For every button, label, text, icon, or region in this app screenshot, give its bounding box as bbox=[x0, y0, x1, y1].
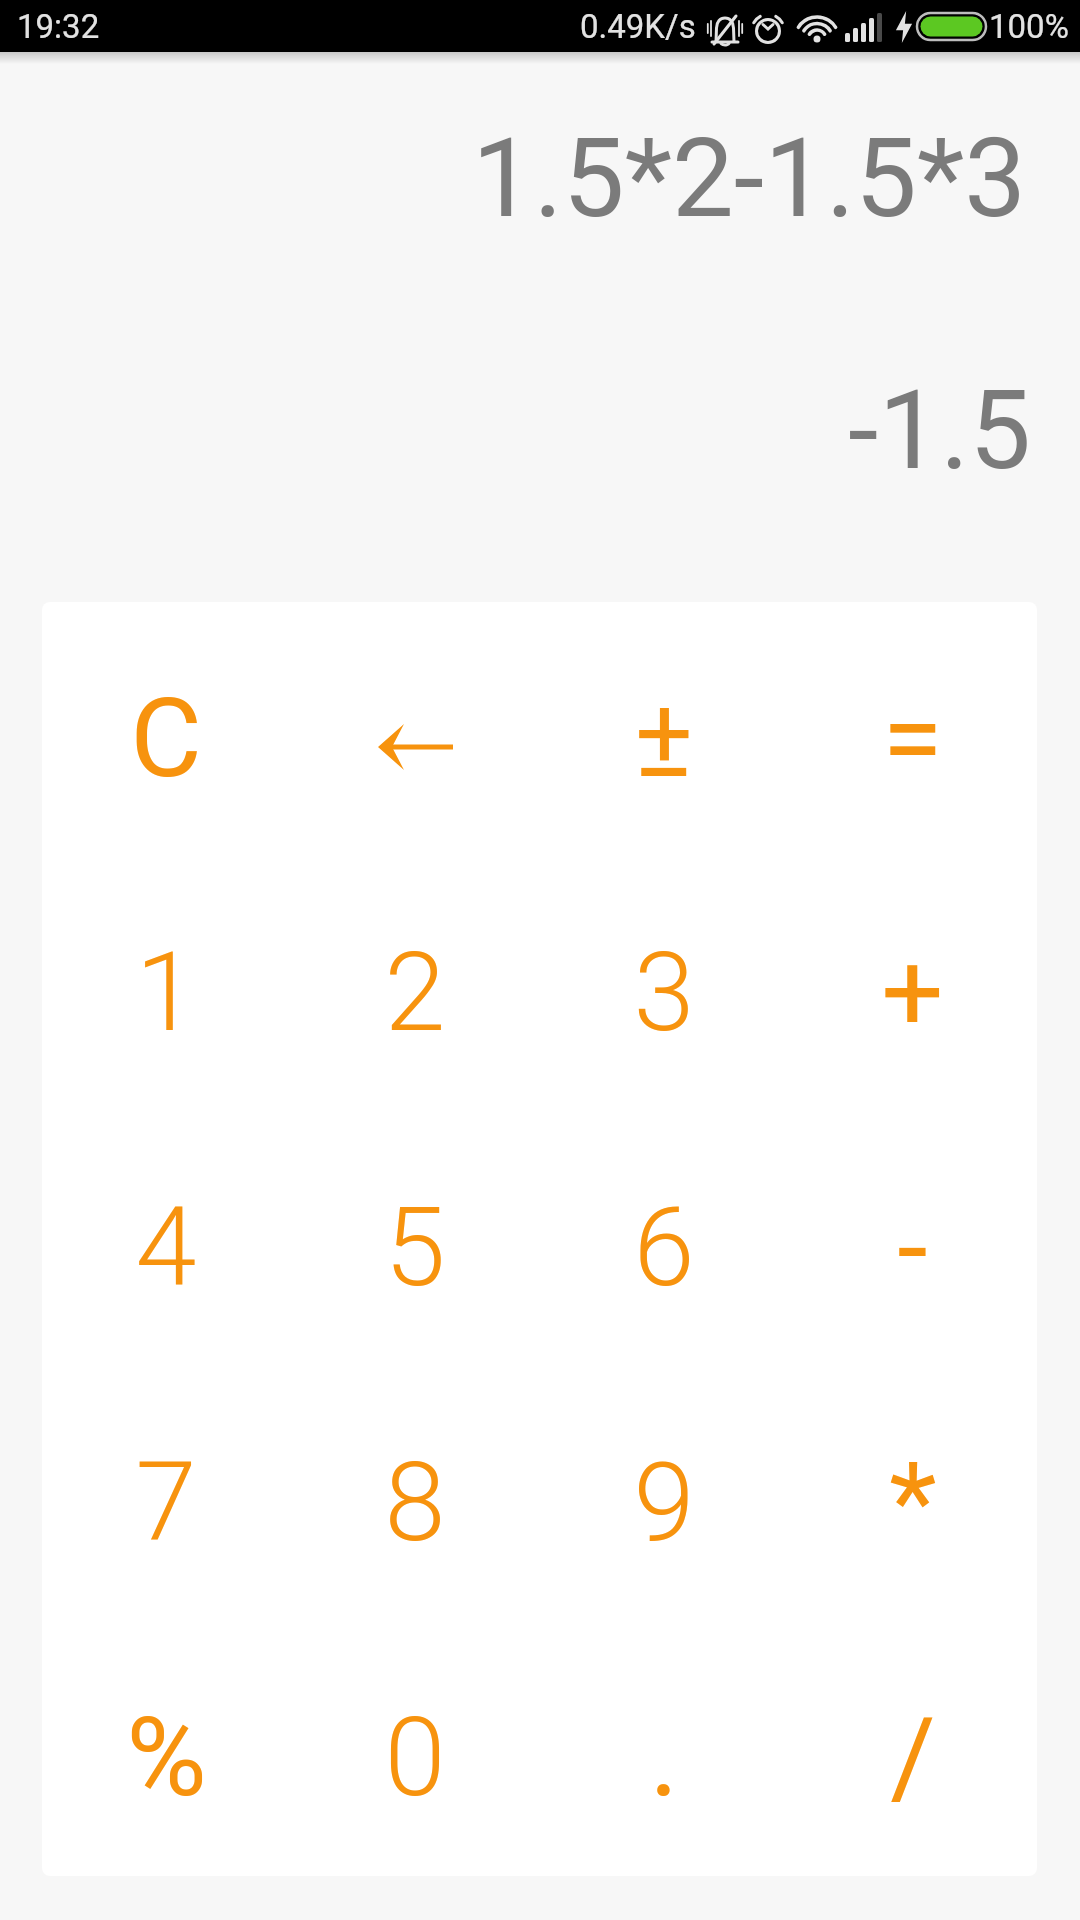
button[interactable]: + bbox=[788, 856, 1037, 1111]
staticText: % bbox=[126, 1693, 207, 1822]
staticText: * bbox=[889, 1438, 937, 1567]
button[interactable]: 1 bbox=[42, 856, 290, 1111]
staticText: - bbox=[897, 1183, 928, 1312]
button[interactable]: 8 bbox=[290, 1366, 539, 1621]
button[interactable]: * bbox=[788, 1366, 1037, 1621]
button[interactable]: 5 bbox=[290, 1111, 539, 1366]
button[interactable]: / bbox=[788, 1621, 1037, 1876]
staticText: 1.5*2-1.5*3 bbox=[472, 114, 1027, 243]
button[interactable]: C bbox=[42, 602, 290, 856]
button[interactable]: 2 bbox=[290, 856, 539, 1111]
staticText: 9 bbox=[633, 1438, 695, 1567]
staticText: 6 bbox=[633, 1183, 695, 1312]
staticText: -1.5 bbox=[848, 366, 1032, 495]
staticText: + bbox=[881, 928, 944, 1057]
staticText: 100% bbox=[989, 7, 1069, 46]
staticText: 8 bbox=[384, 1438, 446, 1567]
button[interactable]: - bbox=[788, 1111, 1037, 1366]
button[interactable]: 0 bbox=[290, 1621, 539, 1876]
staticText: 0.49K/s bbox=[580, 7, 696, 46]
staticText: = bbox=[882, 674, 943, 803]
staticText: 2 bbox=[384, 928, 446, 1057]
staticText: 7 bbox=[135, 1438, 197, 1567]
button[interactable]: 4 bbox=[42, 1111, 290, 1366]
button[interactable]: . bbox=[539, 1621, 788, 1876]
button[interactable] bbox=[290, 602, 539, 856]
staticText: / bbox=[890, 1693, 936, 1822]
button[interactable]: 3 bbox=[539, 856, 788, 1111]
button[interactable]: = bbox=[788, 602, 1037, 856]
staticText: 1 bbox=[135, 928, 197, 1057]
staticText: ± bbox=[634, 674, 693, 803]
staticText: 4 bbox=[135, 1183, 197, 1312]
button[interactable]: 6 bbox=[539, 1111, 788, 1366]
staticText: C bbox=[130, 674, 202, 803]
staticText: 3 bbox=[633, 928, 695, 1057]
button[interactable]: ± bbox=[539, 602, 788, 856]
button[interactable]: 7 bbox=[42, 1366, 290, 1621]
staticText: 0 bbox=[384, 1693, 446, 1822]
staticText: 19:32 bbox=[17, 7, 100, 46]
button[interactable]: 9 bbox=[539, 1366, 788, 1621]
button[interactable]: % bbox=[42, 1621, 290, 1876]
staticText: . bbox=[649, 1693, 679, 1822]
staticText: 5 bbox=[384, 1183, 446, 1312]
